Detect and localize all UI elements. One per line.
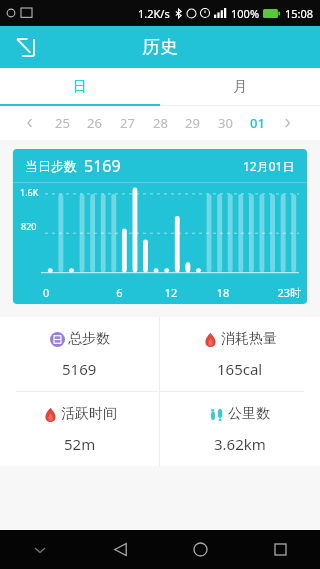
button[interactable]: Hide keyboard [0,530,80,569]
staticText: 月 [233,78,247,96]
staticText: 28 [153,114,168,132]
button[interactable]: 30 [215,114,236,132]
button[interactable]: Next [280,114,298,132]
staticText: 30 [218,114,233,132]
button[interactable]: 消耗热量 [160,317,320,391]
staticText: 165cal [217,359,263,379]
staticText: 日 [73,78,87,96]
button[interactable]: 01 [247,114,268,132]
button[interactable]: 25 [52,114,73,132]
staticText: 5169 [84,155,121,177]
staticText: 1.2K/s [138,6,170,21]
button[interactable]: 总步数 [0,317,159,391]
button[interactable]: 公里数 [160,392,320,466]
staticText: 25 [55,114,70,132]
staticText: 52m [64,434,96,454]
button[interactable]: Previous [22,114,40,132]
button[interactable]: 26 [84,114,105,132]
staticText: 0 [43,285,94,300]
button[interactable]: 27 [117,114,138,132]
button[interactable]: 当日步数 [13,149,307,304]
staticText: 18 [197,285,249,300]
staticText: 5169 [62,359,97,379]
button[interactable]: 28 [150,114,171,132]
button[interactable]: Back [80,530,160,569]
staticText: 23时 [249,285,301,300]
button[interactable]: 月 [160,68,320,106]
button[interactable]: 29 [182,114,203,132]
staticText: 6 [94,285,145,300]
staticText: 3.62km [214,434,266,454]
staticText: 820 [21,220,37,232]
button[interactable]: Home [160,530,240,569]
staticText: 29 [185,114,200,132]
button[interactable]: Recent apps [240,530,320,569]
staticText: 公里数 [228,405,270,423]
button[interactable]: 活跃时间 [0,392,159,466]
staticText: 消耗热量 [221,330,277,348]
staticText: 15:08 [285,6,314,21]
button[interactable]: 日 [0,68,160,106]
staticText: 26 [87,114,102,132]
staticText: 12 [145,285,197,300]
staticText: 活跃时间 [61,405,117,423]
staticText: 总步数 [68,330,110,348]
staticText: 历史 [142,36,178,59]
staticText: 12月01日 [243,158,295,174]
staticText: 100% [231,6,260,21]
button[interactable]: Back [8,30,42,64]
staticText: 当日步数 [25,158,77,174]
staticText: 1.6K [20,186,39,198]
staticText: 27 [120,114,135,132]
staticText: 01 [250,114,265,132]
